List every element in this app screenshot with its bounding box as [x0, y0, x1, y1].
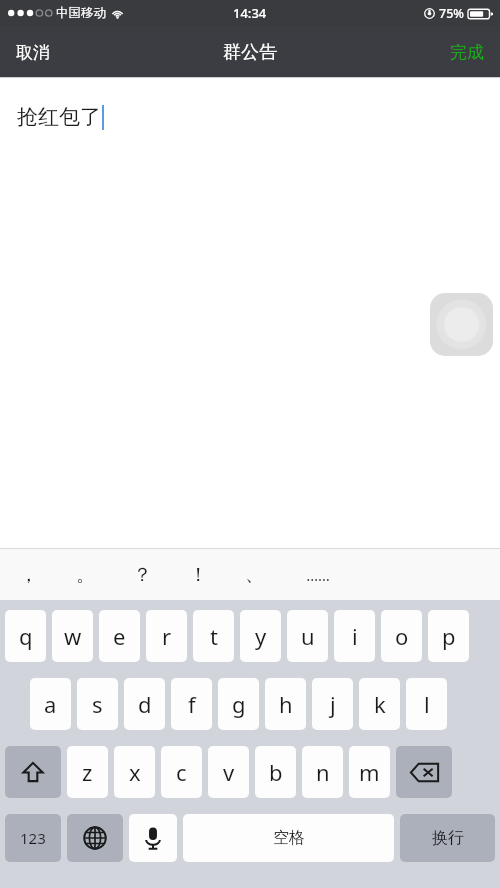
staticText: p [442, 621, 456, 651]
staticText: 123 [20, 828, 46, 848]
staticText: j [330, 689, 336, 719]
staticText: s [92, 689, 103, 719]
staticText: 。 [76, 563, 95, 587]
staticText: 空格 [273, 828, 305, 848]
staticText: 14:34 [233, 4, 267, 22]
button[interactable]: ， [0, 549, 57, 600]
button[interactable]: r [146, 610, 187, 662]
button[interactable]: w [52, 610, 93, 662]
button[interactable]: g [218, 678, 259, 730]
button[interactable]: p [428, 610, 469, 662]
staticText: 中国移动 [56, 5, 106, 21]
staticText: a [44, 689, 57, 719]
button[interactable]: 123 [5, 814, 61, 862]
button[interactable]: e [99, 610, 140, 662]
button[interactable]: h [265, 678, 306, 730]
staticText: o [395, 621, 409, 651]
button[interactable]: x [114, 746, 155, 798]
staticText: n [316, 757, 330, 787]
button[interactable]: y [240, 610, 281, 662]
button[interactable]: v [208, 746, 249, 798]
staticText: c [176, 757, 187, 787]
button[interactable]: 。 [57, 549, 114, 600]
staticText: ， [19, 563, 38, 587]
button[interactable]: l [406, 678, 447, 730]
staticText: h [279, 689, 293, 719]
button[interactable]: 、 [226, 549, 282, 600]
staticText: r [162, 621, 172, 651]
staticText: 抢红包了 [17, 104, 101, 130]
staticText: ？ [133, 563, 152, 587]
button[interactable]: ？ [114, 549, 170, 600]
staticText: z [82, 757, 93, 787]
staticText: u [301, 621, 315, 651]
staticText: i [352, 621, 358, 651]
button[interactable]: AssistiveTouch [430, 293, 493, 356]
button[interactable]: u [287, 610, 328, 662]
staticText: e [113, 621, 126, 651]
button[interactable]: Dictation [129, 814, 177, 862]
button[interactable]: c [161, 746, 202, 798]
button[interactable]: 空格 [183, 814, 394, 862]
button[interactable]: b [255, 746, 296, 798]
button[interactable]: Shift [5, 746, 61, 798]
button[interactable]: n [302, 746, 343, 798]
button[interactable]: z [67, 746, 108, 798]
button[interactable]: 取消 [0, 32, 66, 73]
staticText: f [188, 689, 196, 719]
staticText: l [424, 689, 430, 719]
staticText: 完成 [450, 42, 484, 63]
staticText: b [269, 757, 283, 787]
button[interactable]: ！ [170, 549, 226, 600]
button[interactable]: Backspace [396, 746, 452, 798]
staticText: 换行 [432, 828, 464, 848]
staticText: g [232, 689, 246, 719]
button[interactable]: m [349, 746, 390, 798]
staticText: 群公告 [223, 41, 277, 64]
staticText: y [255, 621, 267, 651]
button[interactable]: …… [282, 549, 353, 600]
button[interactable]: 换行 [400, 814, 495, 862]
staticText: w [64, 621, 82, 651]
button[interactable]: d [124, 678, 165, 730]
button[interactable]: t [193, 610, 234, 662]
staticText: ！ [189, 563, 208, 587]
staticText: x [129, 757, 141, 787]
staticText: 取消 [16, 42, 50, 63]
button[interactable]: k [359, 678, 400, 730]
staticText: v [223, 757, 235, 787]
button[interactable]: f [171, 678, 212, 730]
staticText: k [374, 689, 386, 719]
staticText: q [19, 621, 33, 651]
button[interactable]: j [312, 678, 353, 730]
button[interactable]: a [30, 678, 71, 730]
staticText: d [138, 689, 152, 719]
button[interactable]: i [334, 610, 375, 662]
staticText: …… [306, 565, 330, 585]
button[interactable]: s [77, 678, 118, 730]
button[interactable]: Change keyboard [67, 814, 123, 862]
staticText: 、 [245, 563, 264, 587]
staticText: m [359, 757, 380, 787]
staticText: t [210, 621, 218, 651]
staticText: 75% [439, 5, 464, 22]
button[interactable]: 完成 [434, 32, 500, 73]
button[interactable]: o [381, 610, 422, 662]
button[interactable]: q [5, 610, 46, 662]
